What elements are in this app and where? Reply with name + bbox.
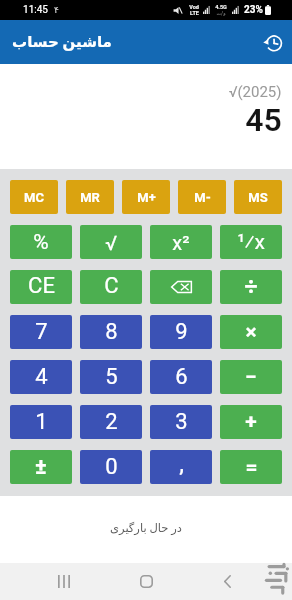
staticText: 6 — [175, 364, 188, 390]
staticText: 9 — [175, 319, 188, 345]
staticText: ۴ — [54, 5, 59, 15]
staticText: M- — [194, 190, 211, 205]
button[interactable]: 7 — [10, 315, 72, 349]
staticText: 4 — [35, 364, 48, 390]
staticText: 11:45 — [23, 4, 48, 16]
button[interactable]: × — [220, 315, 282, 349]
staticText: C — [104, 273, 119, 299]
button[interactable]: Back — [209, 563, 246, 600]
staticText: ÷ — [244, 274, 258, 301]
staticText: MC — [24, 190, 44, 205]
staticText: 45 — [245, 101, 282, 139]
button[interactable]: MR — [66, 180, 114, 214]
staticText: 5 — [105, 364, 118, 390]
button[interactable]: Recent apps — [45, 563, 82, 600]
button[interactable]: 9 — [150, 315, 212, 349]
button[interactable]: , — [150, 450, 212, 484]
button[interactable]: 4 — [10, 360, 72, 394]
staticText: 23% — [244, 4, 263, 16]
button[interactable]: Backspace — [150, 270, 212, 304]
staticText: 3 — [175, 409, 188, 435]
button[interactable]: C — [80, 270, 142, 304]
staticText: + — [245, 410, 257, 435]
staticText: M+ — [137, 190, 156, 205]
staticText: 7 — [35, 319, 48, 345]
button[interactable]: Home — [128, 563, 165, 600]
button[interactable]: = — [220, 450, 282, 484]
staticText: 4.5G — [215, 4, 227, 10]
button[interactable]: + — [220, 405, 282, 439]
staticText: 8 — [105, 319, 118, 345]
staticText: LTE — [190, 10, 199, 16]
staticText: MS — [248, 190, 268, 205]
staticText: در حال بارگیری — [110, 521, 182, 534]
button[interactable]: M- — [178, 180, 226, 214]
staticText: ماشین حساب — [12, 33, 112, 51]
button[interactable]: 2 — [80, 405, 142, 439]
staticText: 0 — [105, 454, 118, 480]
button[interactable]: 3 — [150, 405, 212, 439]
staticText: − — [245, 365, 257, 390]
button[interactable]: MC — [10, 180, 58, 214]
button[interactable]: − — [220, 360, 282, 394]
staticText: × — [245, 320, 257, 345]
button[interactable]: √ — [80, 225, 142, 259]
staticText: = — [245, 455, 258, 480]
staticText: % — [33, 230, 49, 255]
staticText: 1 — [35, 409, 48, 435]
button[interactable]: x² — [150, 225, 212, 259]
staticText: Vod — [189, 4, 199, 10]
button[interactable]: ± — [10, 450, 72, 484]
button[interactable]: ¹⁄x — [220, 225, 282, 259]
button[interactable]: 8 — [80, 315, 142, 349]
button[interactable]: M+ — [122, 180, 170, 214]
staticText: ± — [35, 454, 47, 480]
button[interactable]: 6 — [150, 360, 212, 394]
staticText: 2 — [105, 409, 118, 435]
button[interactable]: 0 — [80, 450, 142, 484]
button[interactable]: 1 — [10, 405, 72, 439]
staticText: MR — [80, 190, 100, 205]
button[interactable]: ÷ — [220, 270, 282, 304]
button[interactable]: MS — [234, 180, 282, 214]
staticText: √(2025) — [228, 83, 282, 101]
staticText: x² — [172, 231, 190, 254]
button[interactable]: Bazaar — [261, 563, 292, 595]
button[interactable]: % — [10, 225, 72, 259]
button[interactable]: 5 — [80, 360, 142, 394]
staticText: √ — [105, 231, 117, 254]
staticText: , — [179, 450, 184, 478]
button[interactable]: CE — [10, 270, 72, 304]
staticText: و/ت — [216, 10, 226, 16]
staticText: ¹⁄x — [237, 230, 265, 255]
button[interactable]: History — [258, 28, 288, 58]
staticText: CE — [28, 273, 55, 299]
